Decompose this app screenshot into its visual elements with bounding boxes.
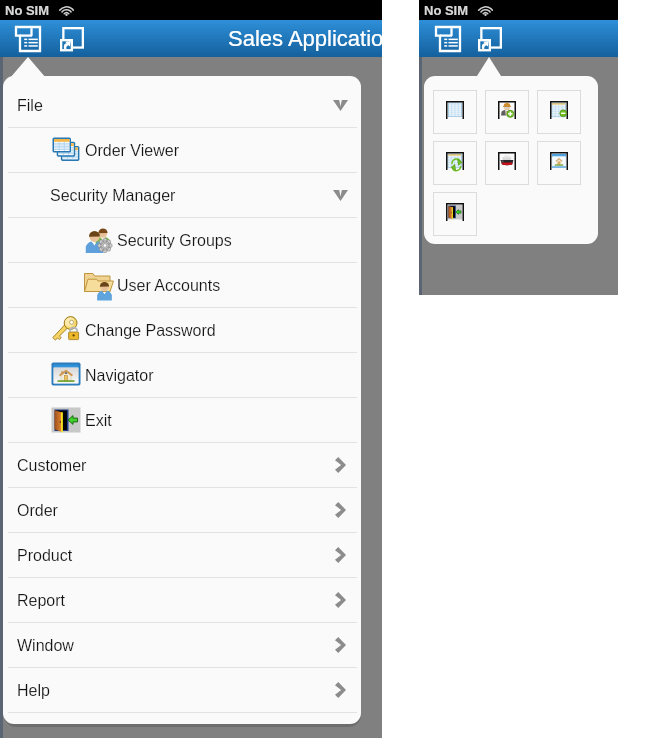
staticText: Report bbox=[17, 592, 66, 610]
button[interactable]: Order bbox=[3, 488, 361, 532]
button[interactable]: Security Manager bbox=[3, 173, 361, 217]
button[interactable]: Report bbox=[3, 578, 361, 622]
staticText: No SIM bbox=[424, 3, 469, 18]
button[interactable]: Exit bbox=[3, 398, 361, 442]
staticText: Customer bbox=[17, 457, 87, 475]
button[interactable]: Table bbox=[433, 90, 477, 134]
staticText: Security Groups bbox=[117, 232, 232, 250]
button[interactable]: Window bbox=[3, 623, 361, 667]
staticText: Help bbox=[17, 682, 50, 700]
staticText: Security Manager bbox=[50, 187, 176, 205]
button[interactable]: Navigator bbox=[537, 141, 581, 185]
button[interactable]: Windows bbox=[55, 22, 89, 56]
button[interactable]: Navigator bbox=[3, 353, 361, 397]
staticText: Order Viewer bbox=[85, 142, 179, 160]
button[interactable]: Add person bbox=[485, 90, 529, 134]
staticText: File bbox=[17, 97, 43, 115]
staticText: Sales Applicatio bbox=[228, 26, 382, 51]
button[interactable]: Security Groups bbox=[3, 218, 361, 262]
button[interactable]: Customer bbox=[3, 443, 361, 487]
button[interactable]: Shipping bbox=[485, 141, 529, 185]
button[interactable]: User Accounts bbox=[3, 263, 361, 307]
button[interactable]: Change Password bbox=[3, 308, 361, 352]
staticText: No SIM bbox=[5, 3, 50, 18]
button[interactable]: Add table bbox=[537, 90, 581, 134]
staticText: Window bbox=[17, 637, 74, 655]
button[interactable]: Product bbox=[3, 533, 361, 577]
button[interactable]: Windows bbox=[473, 22, 507, 56]
button[interactable]: File bbox=[3, 83, 361, 127]
button[interactable]: Menu bbox=[431, 22, 465, 56]
staticText: Order bbox=[17, 502, 58, 520]
button[interactable]: Order Viewer bbox=[3, 128, 361, 172]
staticText: Navigator bbox=[85, 367, 154, 385]
button[interactable]: Exit bbox=[433, 192, 477, 236]
button[interactable]: Help bbox=[3, 668, 361, 712]
staticText: User Accounts bbox=[117, 277, 221, 295]
button[interactable]: Menu bbox=[11, 22, 45, 56]
staticText: Product bbox=[17, 547, 73, 565]
staticText: Exit bbox=[85, 412, 112, 430]
button[interactable]: Sync table bbox=[433, 141, 477, 185]
staticText: Change Password bbox=[85, 322, 216, 340]
